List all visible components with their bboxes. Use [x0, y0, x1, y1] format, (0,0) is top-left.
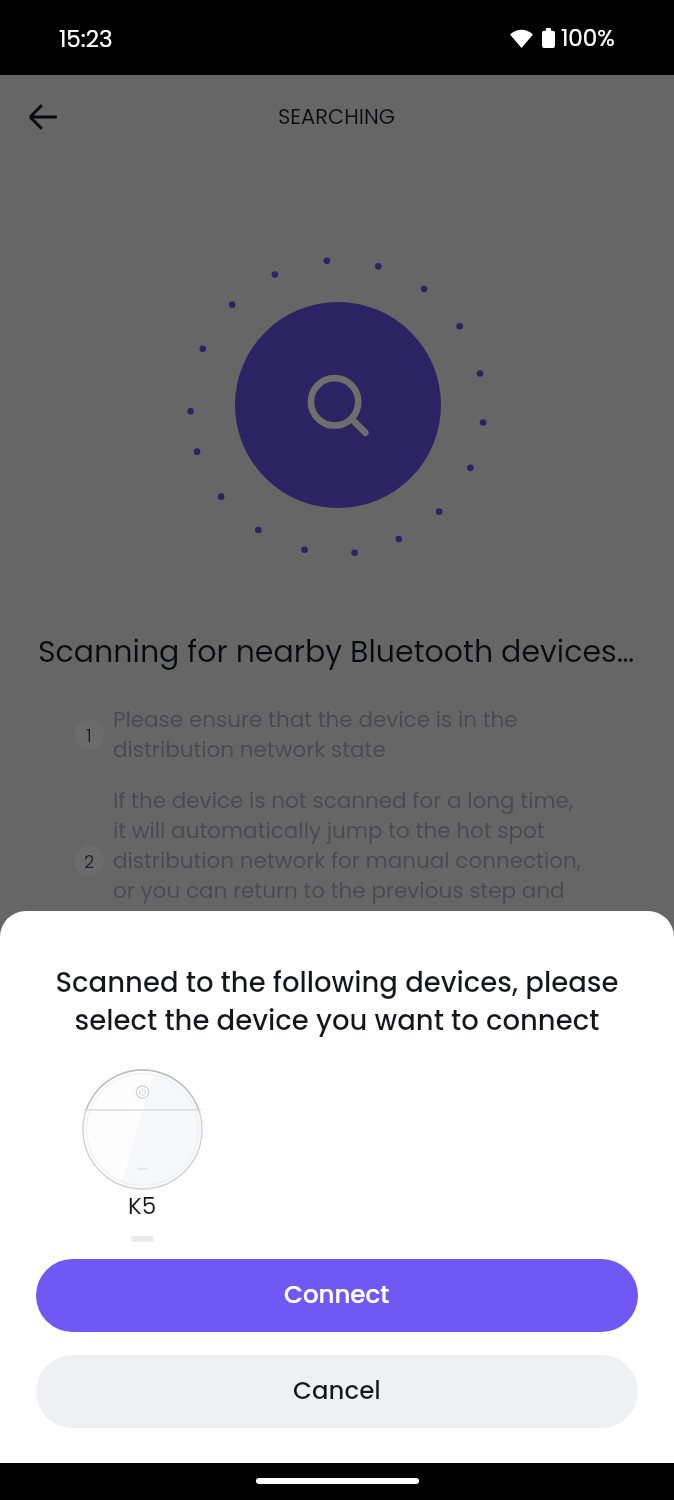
staticText: 1: [86, 723, 92, 748]
staticText: 15:23: [59, 23, 113, 55]
staticText: 100%: [561, 22, 615, 54]
staticText: SEARCHING: [278, 102, 396, 131]
staticText: Scanning for nearby Bluetooth devices…: [38, 631, 635, 673]
staticText: Please ensure that the device is in the …: [113, 704, 518, 764]
button[interactable]: K5: [82, 1069, 203, 1242]
button[interactable]: Back: [21, 95, 65, 139]
staticText: Connect: [284, 1277, 390, 1311]
other: Battery: [542, 28, 555, 48]
button[interactable]: Cancel: [36, 1355, 638, 1428]
button[interactable]: Connect: [36, 1259, 638, 1332]
staticText: 2: [84, 849, 95, 874]
other: Wi-Fi: [510, 28, 533, 48]
staticText: Scanned to the following devices, please…: [46, 963, 628, 1039]
staticText: K5: [128, 1190, 157, 1222]
staticText: Cancel: [293, 1373, 381, 1407]
staticText: If the device is not scanned for a long …: [113, 785, 581, 935]
